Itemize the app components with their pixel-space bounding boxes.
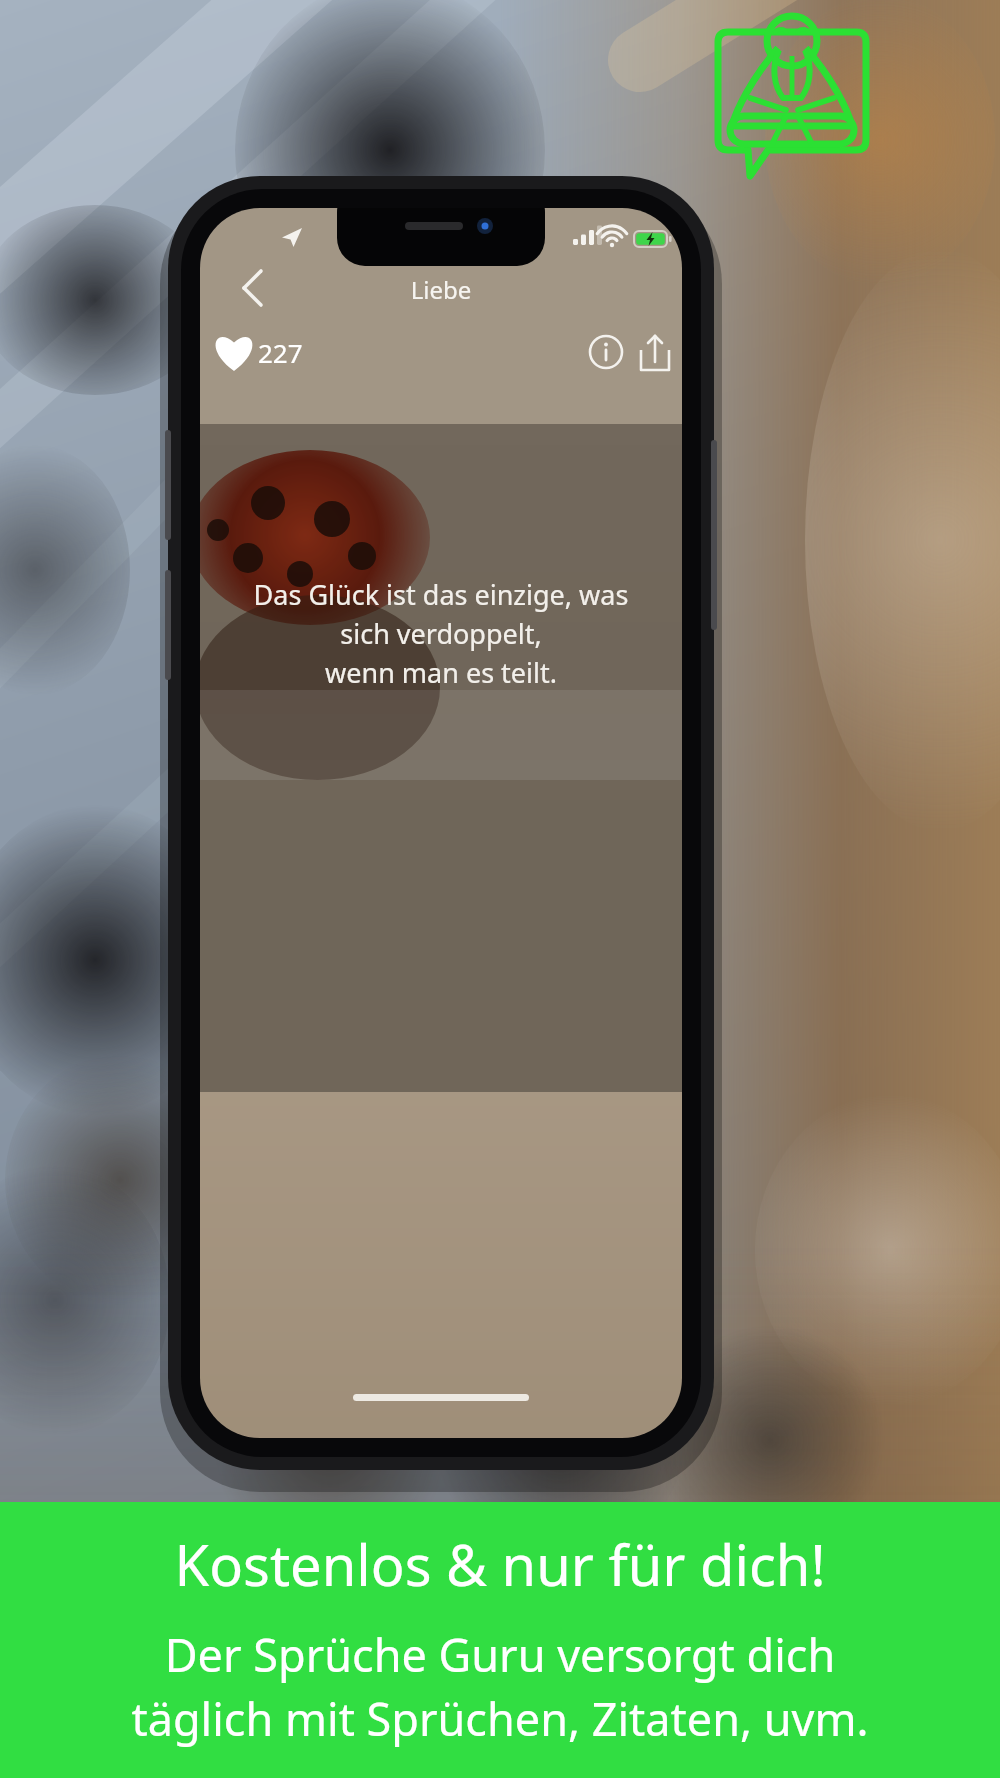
button[interactable]: Share — [631, 328, 679, 376]
staticText: Kostenlos & nur für dich! — [0, 1526, 1000, 1602]
staticText: Liebe — [341, 273, 541, 306]
staticText: Das Glück ist das einzige, was sich verd… — [214, 576, 668, 691]
button[interactable]: Info — [582, 328, 630, 376]
staticText: 227 — [258, 335, 303, 370]
staticText: Der Sprüche Guru versorgt dich täglich m… — [0, 1624, 1000, 1749]
button[interactable]: Liebe — [341, 273, 541, 306]
button[interactable]: Back — [228, 264, 276, 312]
button[interactable]: 227 — [210, 328, 320, 376]
